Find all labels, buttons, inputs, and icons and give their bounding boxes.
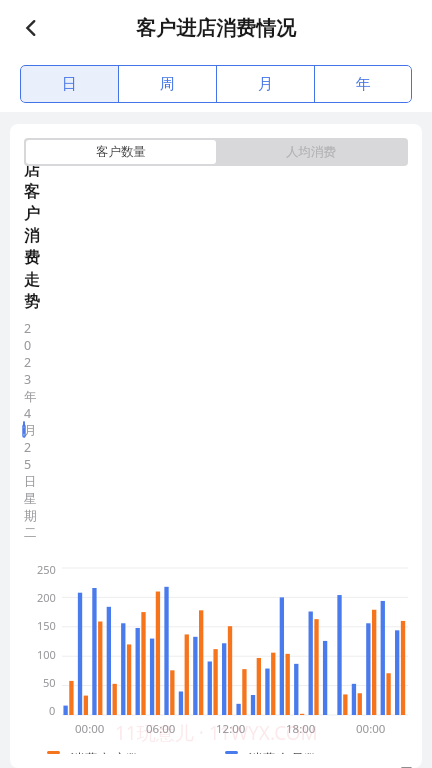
staticText: 0 xyxy=(49,703,56,715)
button[interactable]: 月 xyxy=(217,65,314,103)
staticText: 月 xyxy=(258,75,273,94)
staticText: 客户数量 xyxy=(96,144,146,160)
button[interactable]: 年 xyxy=(315,65,412,103)
staticText: 06:00 xyxy=(146,721,176,737)
staticText: 日 xyxy=(62,75,77,94)
staticText: 18:00 xyxy=(286,721,316,737)
staticText: 50 xyxy=(43,675,56,687)
staticText: 250 xyxy=(37,562,56,574)
staticText: 12:00 xyxy=(216,721,246,737)
staticText: 客户进店消费情况 xyxy=(136,16,296,41)
button[interactable]: 客户数量 xyxy=(35,140,207,164)
staticText: 消费客户数 xyxy=(70,751,140,754)
staticText: 11玩意儿 · 11WYX.COM xyxy=(115,720,318,746)
staticText: 200 xyxy=(37,590,56,602)
staticText: 150 xyxy=(37,618,56,630)
staticText: 年 xyxy=(356,75,371,94)
button[interactable]: Back xyxy=(12,9,50,47)
button[interactable]: 周 xyxy=(119,65,216,103)
staticText: 100 xyxy=(37,647,56,659)
staticText: 消费会员数 xyxy=(248,751,318,754)
staticText: 人均消费 xyxy=(286,144,336,160)
staticText: 00:00 xyxy=(356,721,386,737)
button[interactable]: 日 xyxy=(20,65,118,103)
staticText: 00:00 xyxy=(75,721,105,737)
button[interactable]: 人均消费 xyxy=(225,140,397,164)
staticText: 周 xyxy=(160,75,175,94)
